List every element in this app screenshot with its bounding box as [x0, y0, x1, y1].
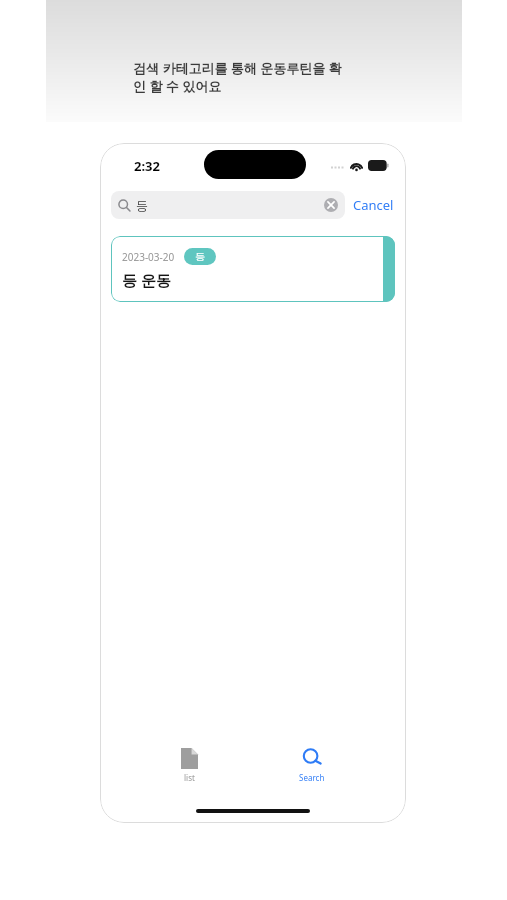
staticText: list [184, 772, 195, 783]
staticText: 등 운동 [122, 270, 171, 290]
staticText: 인 할 수 있어요 [133, 77, 222, 95]
staticText: Search [299, 772, 325, 783]
button[interactable]: Search [279, 744, 345, 787]
staticText: Cancel [353, 196, 394, 214]
button[interactable]: 등 [111, 191, 345, 219]
staticText: 검색 카테고리를 통해 운동루틴을 확 [133, 59, 342, 77]
button[interactable]: Cancel [345, 192, 395, 218]
button[interactable]: Clear search [324, 198, 338, 212]
button[interactable]: list [161, 744, 218, 787]
staticText: 2:32 [134, 157, 160, 175]
staticText: 2023-03-20 [122, 250, 175, 264]
staticText: 등 [195, 250, 205, 263]
staticText: 등 [136, 198, 148, 213]
button[interactable]: 2023-03-20 [111, 236, 395, 302]
